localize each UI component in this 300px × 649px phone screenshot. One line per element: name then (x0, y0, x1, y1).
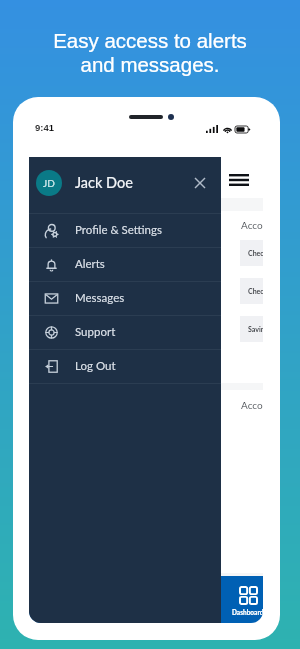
button[interactable]: Alerts (29, 248, 221, 281)
staticText: Profile & Settings (75, 223, 162, 237)
button[interactable]: Open navigation menu (223, 164, 255, 196)
staticText: Accounts (241, 399, 263, 411)
button[interactable]: Messages (29, 282, 221, 315)
button[interactable]: Close menu (187, 155, 213, 211)
button[interactable]: Profile & Settings (29, 214, 221, 247)
button[interactable]: Log Out (29, 350, 221, 383)
staticText: Jack Doe (75, 174, 133, 191)
staticText: Checking (248, 249, 263, 257)
staticText: Log Out (75, 359, 116, 373)
staticText: Alerts (75, 257, 105, 271)
staticText: Support (75, 325, 116, 339)
staticText: Checking (248, 287, 263, 295)
staticText: Messages (75, 291, 125, 305)
button[interactable]: Savings (240, 316, 263, 342)
staticText: Easy access to alerts and messages. (0, 29, 300, 76)
staticText: JD (43, 177, 55, 189)
button[interactable]: Dashboard (209, 576, 263, 623)
staticText: 9:41 (35, 122, 55, 133)
staticText: Accounts (241, 219, 263, 231)
staticText: Dashboard (232, 609, 263, 617)
button[interactable]: Support (29, 316, 221, 349)
button[interactable]: Checking (240, 278, 263, 304)
staticText: Savings (248, 325, 263, 333)
button[interactable]: Checking (240, 240, 263, 266)
